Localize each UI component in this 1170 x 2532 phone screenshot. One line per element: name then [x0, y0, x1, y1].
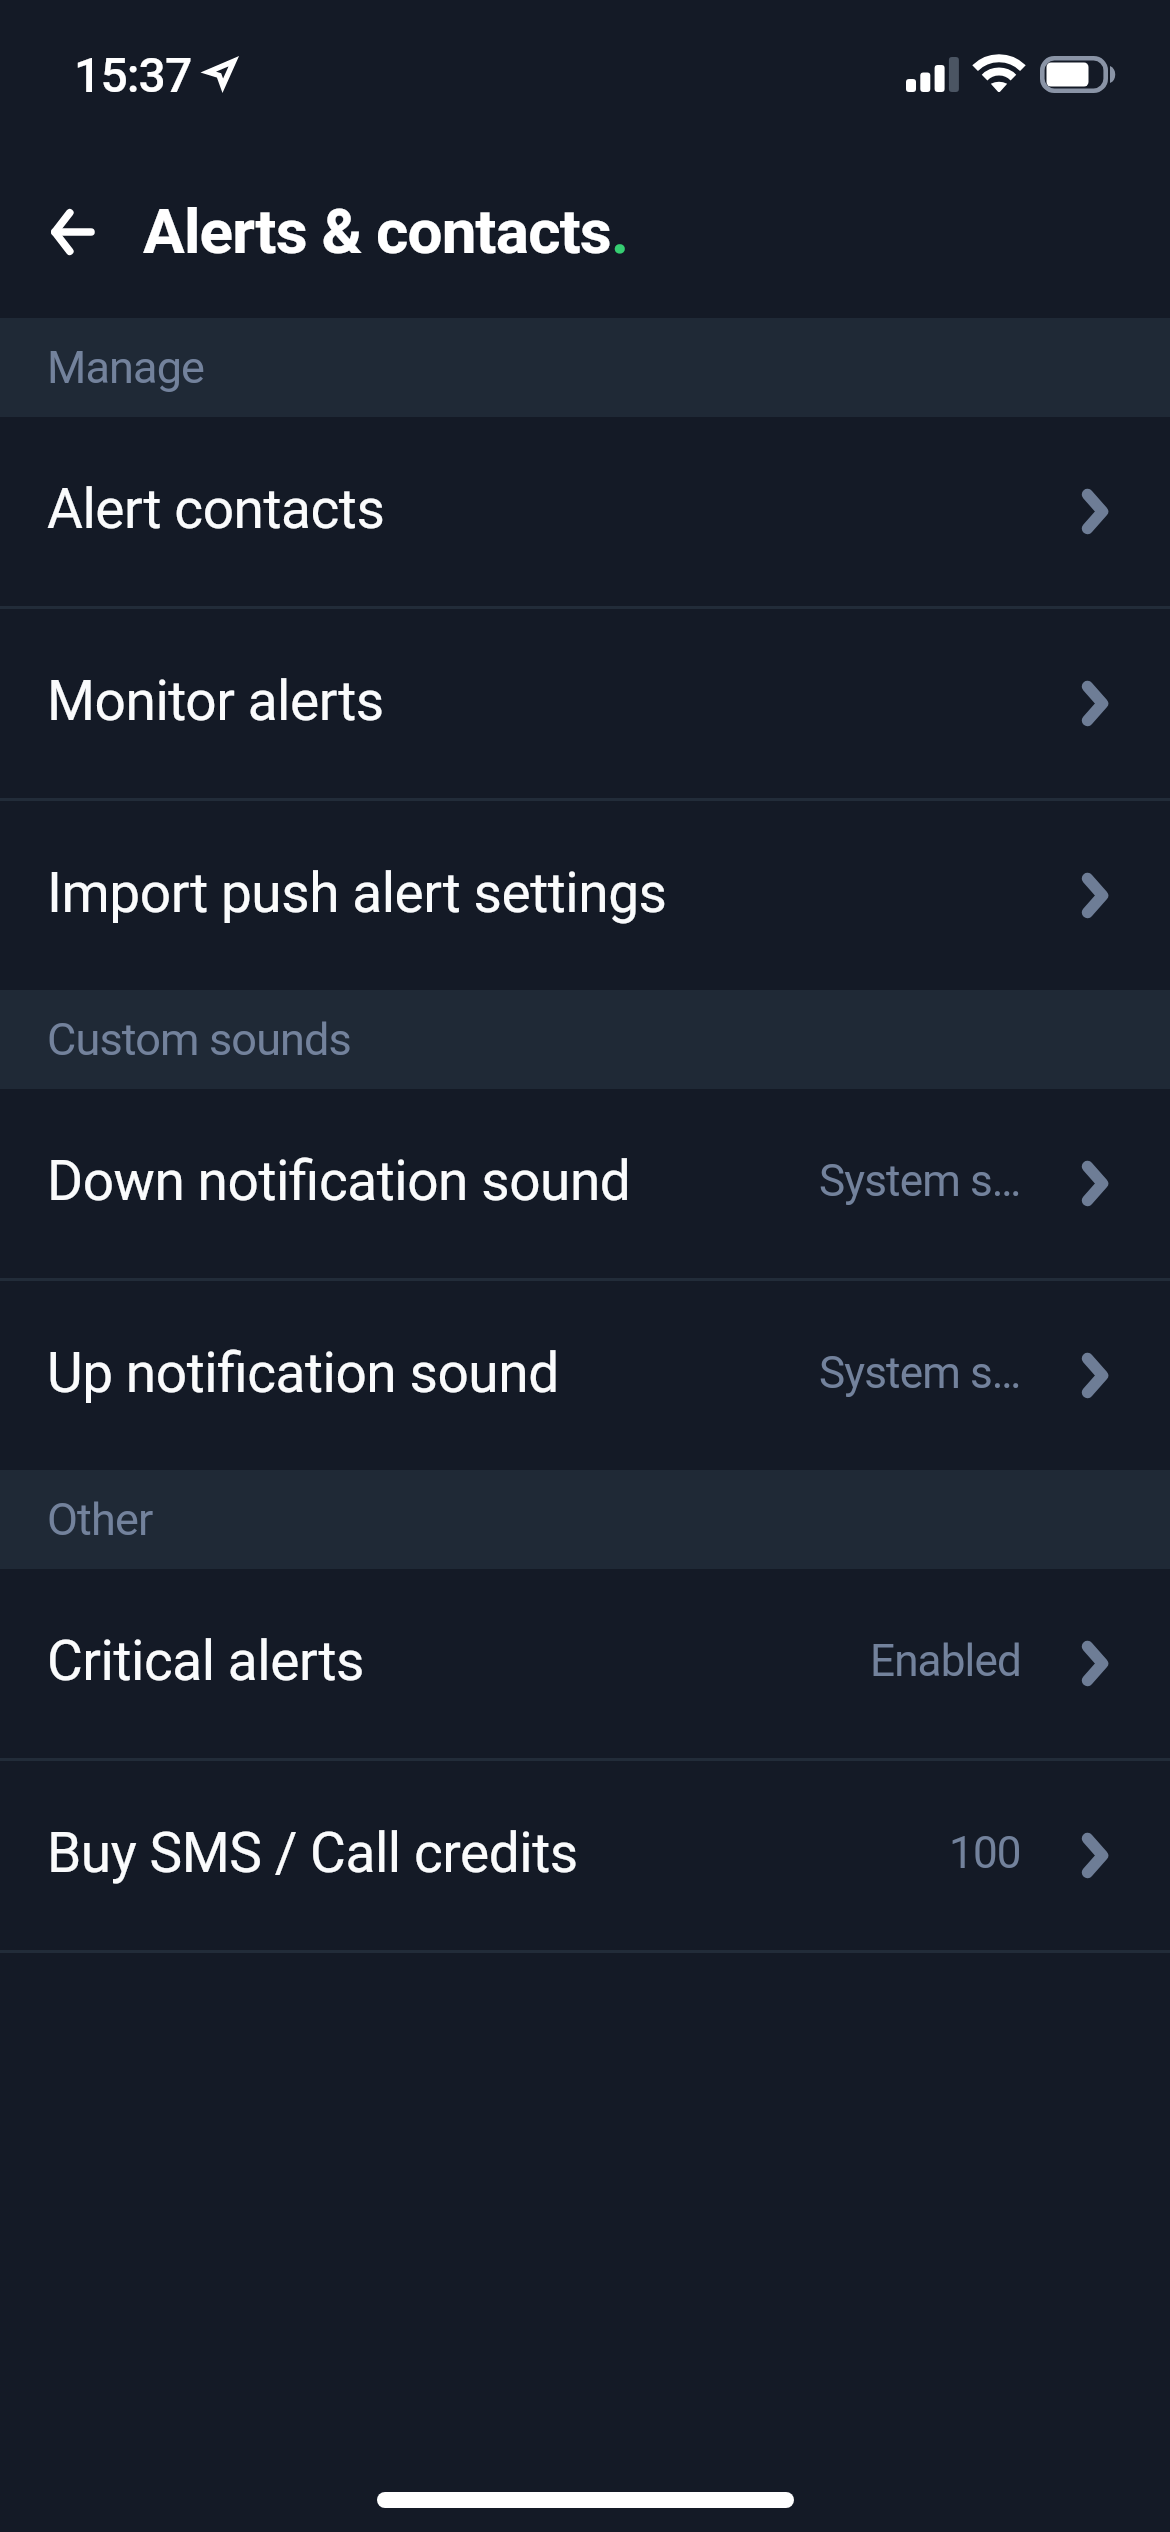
staticText: Down notification sound [47, 1149, 631, 1213]
staticText: Other [47, 1493, 153, 1546]
staticText: 15:37 [74, 47, 192, 103]
button[interactable]: Monitor alerts [0, 609, 1170, 798]
staticText: Custom sounds [47, 1013, 351, 1066]
staticText: Buy SMS / Call credits [47, 1821, 578, 1885]
staticText: System s… [819, 1347, 1021, 1399]
staticText: Critical alerts [47, 1629, 364, 1693]
staticText: Import push alert settings [47, 861, 667, 925]
staticText: Alerts & contacts. [143, 195, 629, 268]
staticText: Alert contacts [47, 477, 385, 541]
button[interactable]: Down notification sound [0, 1089, 1170, 1278]
staticText: 100 [949, 1827, 1021, 1879]
button[interactable]: Up notification sound [0, 1281, 1170, 1470]
button[interactable]: Back [29, 190, 113, 274]
staticText: Monitor alerts [47, 669, 384, 733]
button[interactable]: Buy SMS / Call credits [0, 1761, 1170, 1950]
button[interactable]: Alert contacts [0, 417, 1170, 606]
button[interactable]: Import push alert settings [0, 801, 1170, 990]
staticText: Up notification sound [47, 1341, 559, 1405]
staticText: Manage [47, 341, 205, 394]
staticText: System s… [819, 1155, 1021, 1207]
staticText: Enabled [870, 1635, 1021, 1687]
button[interactable]: Critical alerts [0, 1569, 1170, 1758]
